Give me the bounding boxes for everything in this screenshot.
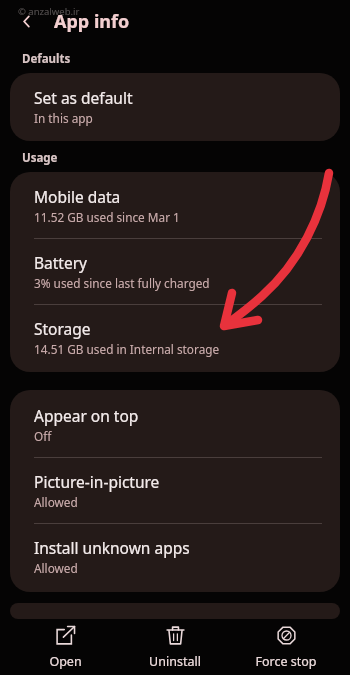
- staticText: Install unknown apps: [34, 537, 190, 558]
- staticText: © anzalweb.ir: [18, 5, 80, 18]
- staticText: Storage: [34, 318, 91, 339]
- button[interactable]: Picture-in-picture: [10, 458, 340, 523]
- staticText: Force stop: [255, 653, 317, 669]
- staticText: 14.51 GB used in Internal storage: [34, 341, 220, 357]
- button[interactable]: Install unknown apps: [10, 524, 340, 592]
- button[interactable]: Storage: [10, 305, 340, 372]
- staticText: Usage: [22, 150, 58, 166]
- staticText: In this app: [34, 110, 93, 126]
- staticText: Picture-in-picture: [34, 471, 160, 492]
- staticText: Allowed: [34, 494, 78, 510]
- button[interactable]: Force stop app: [234, 619, 338, 675]
- staticText: Set as default: [34, 87, 133, 108]
- staticText: Defaults: [22, 51, 71, 67]
- staticText: Open: [49, 653, 82, 669]
- staticText: Battery: [34, 252, 88, 273]
- button[interactable]: Battery: [10, 239, 340, 304]
- button[interactable]: Appear on top: [10, 390, 340, 457]
- staticText: Uninstall: [149, 653, 201, 669]
- staticText: Allowed: [34, 560, 78, 576]
- button[interactable]: Set as default: [10, 73, 340, 141]
- staticText: App info: [54, 9, 130, 34]
- button[interactable]: Uninstall app: [123, 619, 227, 675]
- staticText: 3% used since last fully charged: [34, 275, 210, 291]
- staticText: 11.52 GB used since Mar 1: [34, 209, 180, 225]
- button[interactable]: Open app: [13, 619, 117, 675]
- button[interactable]: Back: [12, 6, 42, 36]
- staticText: Mobile data: [34, 186, 121, 207]
- button[interactable]: Mobile data: [10, 172, 340, 238]
- staticText: Off: [34, 428, 52, 444]
- staticText: Appear on top: [34, 405, 139, 426]
